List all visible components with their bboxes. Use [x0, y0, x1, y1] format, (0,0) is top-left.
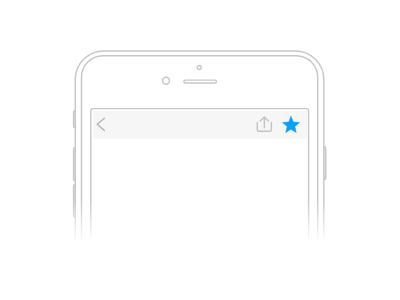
button[interactable]: Back [92, 111, 118, 139]
button[interactable]: Bookmark [279, 111, 304, 139]
button[interactable]: Share [252, 111, 277, 139]
